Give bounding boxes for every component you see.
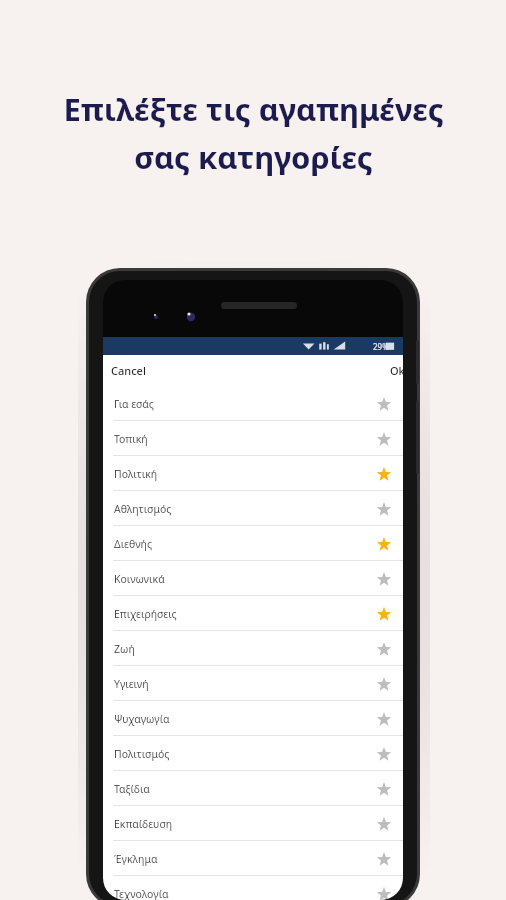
other: Remove Επιχειρήσεις from favourites (375, 605, 393, 623)
staticText: Cancel (111, 363, 146, 378)
staticText: Υγιεινή (114, 677, 375, 691)
staticText: Πολιτική (114, 467, 375, 481)
staticText: Αθλητισμός (114, 502, 375, 516)
staticText: Για εσάς (114, 397, 375, 411)
button[interactable]: Ok (382, 359, 403, 382)
staticText: Κοινωνικά (114, 572, 375, 586)
button[interactable]: Υγιεινή (103, 666, 403, 701)
other: Add Αθλητισμός to favourites (375, 500, 393, 518)
other: Add Ψυχαγωγία to favourites (375, 710, 393, 728)
button[interactable]: Πολιτική (103, 456, 403, 491)
other: Remove Πολιτική from favourites (375, 465, 393, 483)
other: Add Κοινωνικά to favourites (375, 570, 393, 588)
staticText: Επιχειρήσεις (114, 607, 375, 621)
staticText: Πολιτισμός (114, 747, 375, 761)
staticText: Διεθνής (114, 537, 375, 551)
other: Add Υγιεινή to favourites (375, 675, 393, 693)
button[interactable]: Εκπαίδευση (103, 806, 403, 841)
button[interactable]: Ταξίδια (103, 771, 403, 806)
button[interactable]: Ψυχαγωγία (103, 701, 403, 736)
button[interactable]: Τεχνολογία (103, 876, 403, 900)
staticText: Ψυχαγωγία (114, 712, 375, 726)
other: Add Για εσάς to favourites (375, 395, 393, 413)
button[interactable]: Για εσάς (103, 386, 403, 421)
staticText: Τοπική (114, 432, 375, 446)
staticText: Ζωή (114, 642, 375, 656)
other: Remove Διεθνής from favourites (375, 535, 393, 553)
staticText: Εκπαίδευση (114, 817, 375, 831)
other: Add Πολιτισμός to favourites (375, 745, 393, 763)
staticText: σας κατηγορίες (134, 136, 373, 178)
staticText: Ok (390, 363, 403, 378)
staticText: Έγκλημα (114, 852, 375, 866)
button[interactable]: Κοινωνικά (103, 561, 403, 596)
other: Add Τεχνολογία to favourites (375, 885, 393, 900)
staticText: 29% (373, 341, 389, 352)
button[interactable]: Ζωή (103, 631, 403, 666)
staticText: Ταξίδια (114, 782, 375, 796)
other: Add Ταξίδια to favourites (375, 780, 393, 798)
other: Add Εκπαίδευση to favourites (375, 815, 393, 833)
button[interactable]: Επιχειρήσεις (103, 596, 403, 631)
button[interactable]: Διεθνής (103, 526, 403, 561)
button[interactable]: Τοπική (103, 421, 403, 456)
button[interactable]: Έγκλημα (103, 841, 403, 876)
staticText: Επιλέξτε τις αγαπημένες (63, 88, 444, 130)
other: Add Τοπική to favourites (375, 430, 393, 448)
button[interactable]: Πολιτισμός (103, 736, 403, 771)
other: Add Έγκλημα to favourites (375, 850, 393, 868)
staticText: Τεχνολογία (114, 887, 375, 900)
button[interactable]: Αθλητισμός (103, 491, 403, 526)
button[interactable]: Cancel (103, 359, 154, 382)
other: Add Ζωή to favourites (375, 640, 393, 658)
